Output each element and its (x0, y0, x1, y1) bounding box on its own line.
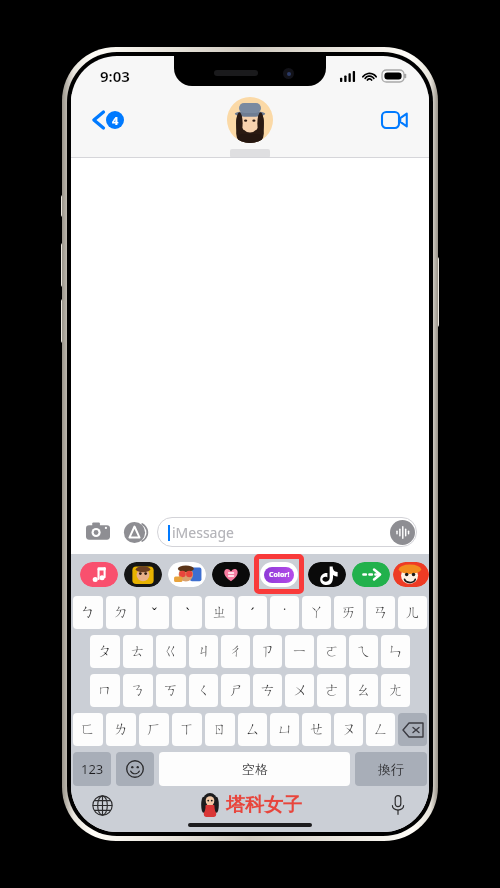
staticText: ㄌ (113, 720, 129, 739)
button[interactable]: iMessage app (308, 562, 346, 587)
button[interactable]: ㄡ (334, 713, 363, 746)
button[interactable]: iMessage app (352, 562, 390, 587)
staticText: ㄈ (80, 720, 96, 739)
button[interactable]: iMessage app (124, 562, 162, 587)
staticText: ㄡ (341, 720, 357, 739)
button[interactable]: Dictation (383, 790, 413, 820)
button[interactable]: iMessage app (168, 562, 206, 587)
button[interactable]: ㄎ (156, 674, 186, 707)
button[interactable]: ㄖ (205, 713, 235, 746)
button[interactable]: ㄝ (302, 713, 331, 746)
staticText: ㄅ (80, 603, 96, 622)
button[interactable]: ㄣ (381, 635, 410, 668)
staticText: ㄛ (324, 642, 340, 661)
staticText: ˙ (283, 603, 286, 623)
staticText: iMessage (172, 523, 234, 542)
staticText: 9:03 (100, 66, 130, 86)
staticText: ㄚ (309, 603, 325, 622)
button[interactable]: ㄊ (123, 635, 153, 668)
staticText: ㄤ (388, 681, 404, 700)
button[interactable]: ㄋ (123, 674, 153, 707)
staticText: ㄎ (163, 681, 179, 700)
staticText: ㄐ (196, 642, 212, 661)
button[interactable]: ㄉ (106, 596, 136, 629)
staticText: ㄊ (130, 642, 146, 661)
staticText: ㄣ (388, 642, 404, 661)
staticText: ㄟ (356, 642, 372, 661)
button[interactable]: ㄅ (73, 596, 103, 629)
staticText: ㄨ (292, 681, 308, 700)
button[interactable]: ㄇ (90, 674, 120, 707)
button[interactable]: ㄦ (398, 596, 427, 629)
staticText: ㄠ (356, 681, 372, 700)
button[interactable]: Back, 4 unread (85, 105, 132, 135)
button[interactable]: ㄛ (317, 635, 346, 668)
button[interactable]: iMessage app (212, 562, 250, 587)
button[interactable]: ˋ (172, 596, 202, 629)
staticText: ㄗ (260, 642, 276, 661)
button[interactable]: ㄏ (139, 713, 169, 746)
button[interactable]: ㄜ (317, 674, 346, 707)
button[interactable]: ㄩ (270, 713, 299, 746)
button[interactable]: ㄠ (349, 674, 378, 707)
staticText: ㄋ (130, 681, 146, 700)
staticText: ㄕ (228, 681, 244, 700)
button[interactable]: Change keyboard (87, 790, 117, 820)
button[interactable]: ㄗ (253, 635, 282, 668)
staticText: ㄜ (324, 681, 340, 700)
button[interactable]: FaceTime video call (374, 104, 415, 136)
button[interactable]: ㄍ (156, 635, 186, 668)
button[interactable]: ㄈ (73, 713, 103, 746)
button[interactable]: ㄘ (253, 674, 282, 707)
button[interactable]: ㄥ (366, 713, 395, 746)
staticText: ˇ (151, 603, 158, 623)
button[interactable]: 123 (73, 752, 111, 786)
button[interactable]: 換行 (355, 752, 427, 786)
button[interactable]: ㄢ (366, 596, 395, 629)
button[interactable]: Camera (83, 517, 113, 547)
button[interactable]: 空格 (159, 752, 350, 786)
button[interactable]: ˊ (238, 596, 267, 629)
button[interactable]: iMessage (157, 517, 417, 547)
button[interactable]: ㄐ (189, 635, 218, 668)
button[interactable]: Color app (260, 562, 298, 587)
button[interactable]: ㄑ (189, 674, 218, 707)
button[interactable]: Backspace (398, 713, 427, 746)
button[interactable]: Apps (119, 517, 149, 547)
staticText: 123 (81, 760, 104, 778)
button[interactable]: ㄔ (221, 635, 250, 668)
button[interactable]: ㄤ (381, 674, 410, 707)
button[interactable]: ㄞ (334, 596, 363, 629)
button[interactable]: iMessage app (393, 562, 429, 587)
staticText: ㄇ (97, 681, 113, 700)
button[interactable]: iMessage app (80, 562, 118, 587)
button[interactable]: ㄙ (238, 713, 267, 746)
staticText: ㄉ (113, 603, 129, 622)
staticText: ㄦ (405, 603, 421, 622)
button[interactable]: Record audio (390, 520, 415, 545)
staticText: 空格 (242, 761, 268, 777)
staticText: ㄆ (97, 642, 113, 661)
staticText: ㄓ (212, 603, 228, 622)
button[interactable]: ㄨ (285, 674, 314, 707)
button[interactable]: ˙ (270, 596, 299, 629)
button[interactable]: ㄚ (302, 596, 331, 629)
button[interactable]: Contact (227, 97, 273, 143)
staticText: ˋ (185, 603, 190, 623)
staticText: ㄢ (373, 603, 389, 622)
staticText: ㄍ (163, 642, 179, 661)
button[interactable]: ㄌ (106, 713, 136, 746)
button[interactable]: ㄓ (205, 596, 235, 629)
button[interactable]: ㄟ (349, 635, 378, 668)
button[interactable]: ㄒ (172, 713, 202, 746)
button[interactable]: ˇ (139, 596, 169, 629)
button[interactable]: ㄕ (221, 674, 250, 707)
button[interactable]: Emoji (116, 752, 154, 786)
staticText: ㄩ (277, 720, 293, 739)
button[interactable]: ㄆ (90, 635, 120, 668)
staticText: 換行 (378, 761, 404, 777)
staticText: ㄔ (228, 642, 244, 661)
button[interactable]: ㄧ (285, 635, 314, 668)
staticText: 塔科女子 (226, 793, 302, 817)
staticText: ㄙ (245, 720, 261, 739)
